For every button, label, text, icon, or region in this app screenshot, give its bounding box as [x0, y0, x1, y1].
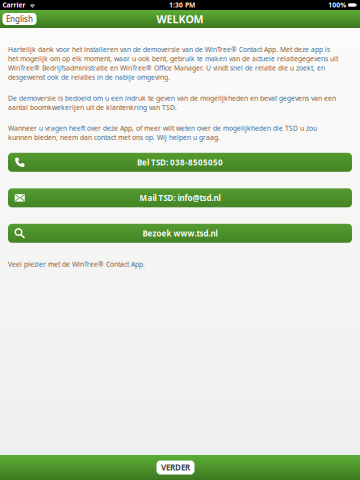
staticText: Hartelijk dank voor het installeren van … — [8, 45, 330, 54]
staticText: Mail TSD: info@tsd.nl — [139, 192, 220, 203]
button[interactable]: VERDER — [156, 460, 194, 474]
button[interactable]: Bezoek www.tsd.nl — [8, 224, 352, 243]
staticText: VERDER — [161, 462, 190, 473]
staticText: Bel TSD: 038-8505050 — [137, 157, 223, 168]
button[interactable]: English — [2, 13, 36, 25]
staticText: desgewenst ook de relaties in de nabije … — [8, 73, 170, 82]
staticText: het mogelijk om op elk moment, waar u oo… — [8, 54, 338, 63]
staticText: English — [6, 14, 33, 24]
staticText: kunnen bieden, neem dan contact met ons … — [8, 133, 220, 142]
staticText: Wanneer u vragen heeft over deze App, of… — [8, 124, 317, 133]
staticText: 100% — [328, 1, 346, 9]
staticText: De demoversie is bedoeld om u een indruk… — [8, 94, 336, 102]
staticText: Carrier — [2, 1, 25, 9]
staticText: WinTree® Bedrijfsadministratie en WinTre… — [8, 63, 325, 72]
staticText: WELKOM — [156, 12, 203, 26]
staticText: Bezoek www.tsd.nl — [142, 228, 217, 239]
staticText: aantal boomkwekerijen uit de klantenkrin… — [8, 103, 177, 112]
button[interactable]: Mail TSD: info@tsd.nl — [8, 188, 352, 207]
staticText: Veel plezier met de WinTree® Contact App… — [8, 260, 145, 269]
staticText: 1:30 PM — [169, 1, 195, 9]
button[interactable]: Bel TSD: 038-8505050 — [8, 153, 352, 172]
